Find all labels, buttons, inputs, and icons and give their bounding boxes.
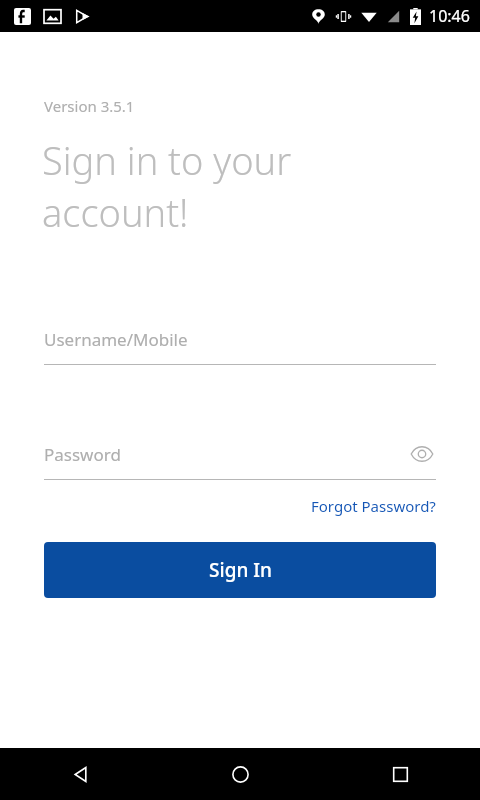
staticText: 10:46 xyxy=(429,5,470,27)
button[interactable]: Home xyxy=(160,748,320,800)
staticText: Sign In xyxy=(209,557,272,583)
staticText: Username/Mobile xyxy=(44,328,188,351)
button[interactable]: Back xyxy=(0,748,160,800)
button[interactable]: Forgot Password? xyxy=(311,496,436,516)
staticText: Version 3.5.1 xyxy=(44,96,135,116)
button[interactable]: Username/Mobile xyxy=(44,324,436,365)
staticText: Password xyxy=(44,443,121,466)
button[interactable]: Recents xyxy=(320,748,480,800)
staticText: Sign in to your account! xyxy=(42,134,292,238)
staticText: Forgot Password? xyxy=(311,496,436,516)
button[interactable]: Show password xyxy=(408,440,436,468)
button[interactable]: Password xyxy=(44,439,436,480)
button[interactable]: Sign In xyxy=(44,542,436,598)
